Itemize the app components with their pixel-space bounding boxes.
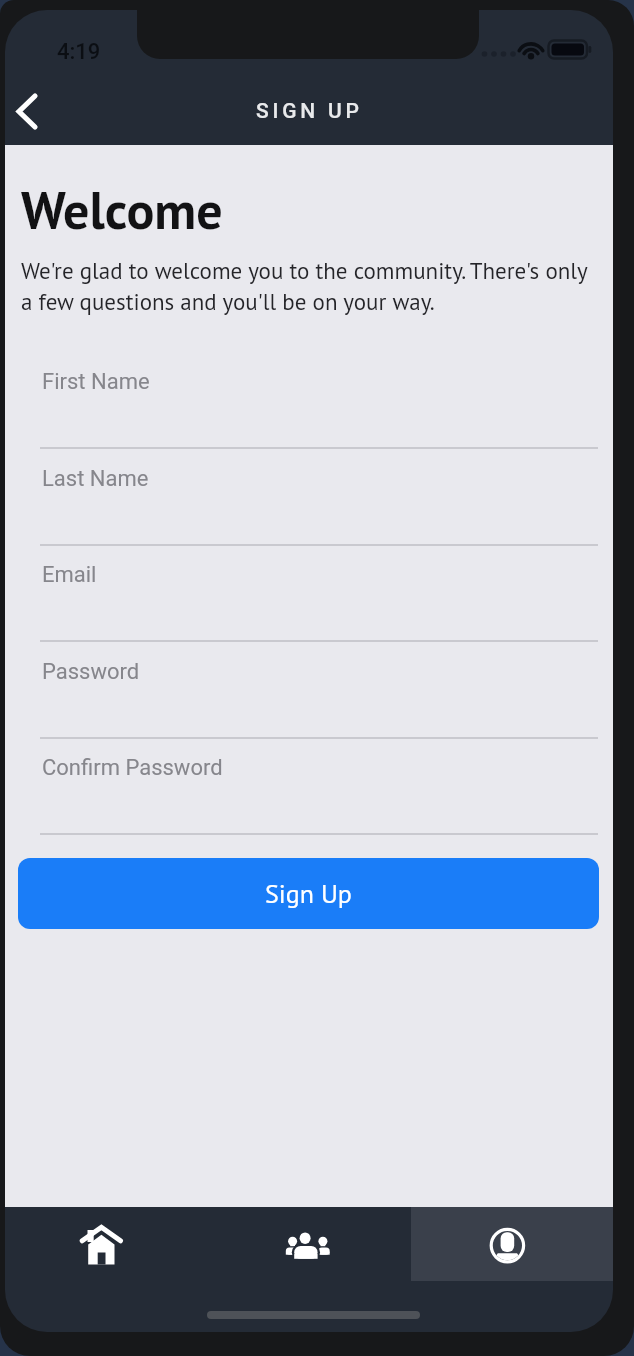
button[interactable] <box>208 1207 411 1291</box>
staticText: Sign Up <box>265 877 352 911</box>
staticText: First Name <box>42 369 150 395</box>
staticText: We're glad to welcome you to the communi… <box>21 256 588 317</box>
button[interactable] <box>5 1207 208 1291</box>
staticText: Last Name <box>42 466 149 492</box>
button[interactable] <box>7 86 55 138</box>
staticText: SIGN UP <box>256 99 363 124</box>
button[interactable]: First Name <box>40 369 598 449</box>
button[interactable]: Password <box>40 659 598 739</box>
button[interactable]: Email <box>40 562 598 642</box>
button[interactable]: Confirm Password <box>40 755 598 835</box>
button[interactable]: Last Name <box>40 466 598 546</box>
staticText: Email <box>42 562 97 588</box>
staticText: Welcome <box>21 176 223 243</box>
button[interactable] <box>411 1207 613 1281</box>
button[interactable]: Sign Up <box>18 858 599 929</box>
staticText: Confirm Password <box>42 755 223 781</box>
staticText: Password <box>42 659 140 685</box>
staticText: 4:19 <box>57 39 101 65</box>
